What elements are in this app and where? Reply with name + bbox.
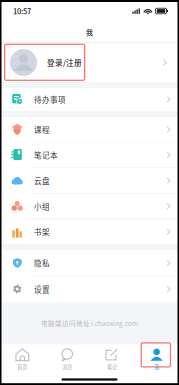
- staticText: 设置: [34, 284, 50, 295]
- staticText: 笔记: [107, 363, 117, 370]
- button[interactable]: 课程: [0, 117, 179, 142]
- staticText: 笔记本: [34, 149, 58, 160]
- button[interactable]: 笔记本: [0, 142, 179, 167]
- button[interactable]: 消息: [45, 344, 90, 374]
- staticText: 10:57: [13, 5, 31, 16]
- staticText: 课程: [34, 124, 50, 135]
- staticText: 隐私: [34, 257, 50, 268]
- staticText: 首页: [17, 363, 27, 370]
- button[interactable]: 书架: [0, 219, 179, 244]
- button[interactable]: 首页: [0, 344, 45, 374]
- staticText: 登录/注册: [47, 57, 82, 68]
- staticText: 我: [86, 27, 93, 37]
- staticText: 待办事项: [34, 94, 66, 105]
- staticText: 小组: [34, 201, 50, 212]
- staticText: 消息: [62, 363, 72, 370]
- button[interactable]: 我: [134, 344, 179, 374]
- button[interactable]: 登录/注册: [0, 43, 179, 82]
- staticText: 云盘: [34, 175, 50, 186]
- button[interactable]: 云盘: [0, 168, 179, 193]
- button[interactable]: 待办事项: [0, 88, 179, 111]
- staticText: 电脑端访问地址 i.chaoxing.com: [41, 318, 138, 328]
- button[interactable]: 隐私: [0, 250, 179, 276]
- button[interactable]: 设置: [0, 276, 179, 302]
- staticText: 我: [154, 363, 159, 370]
- staticText: 书架: [34, 226, 50, 237]
- button[interactable]: 笔记: [89, 344, 134, 374]
- button[interactable]: 小组: [0, 194, 179, 219]
